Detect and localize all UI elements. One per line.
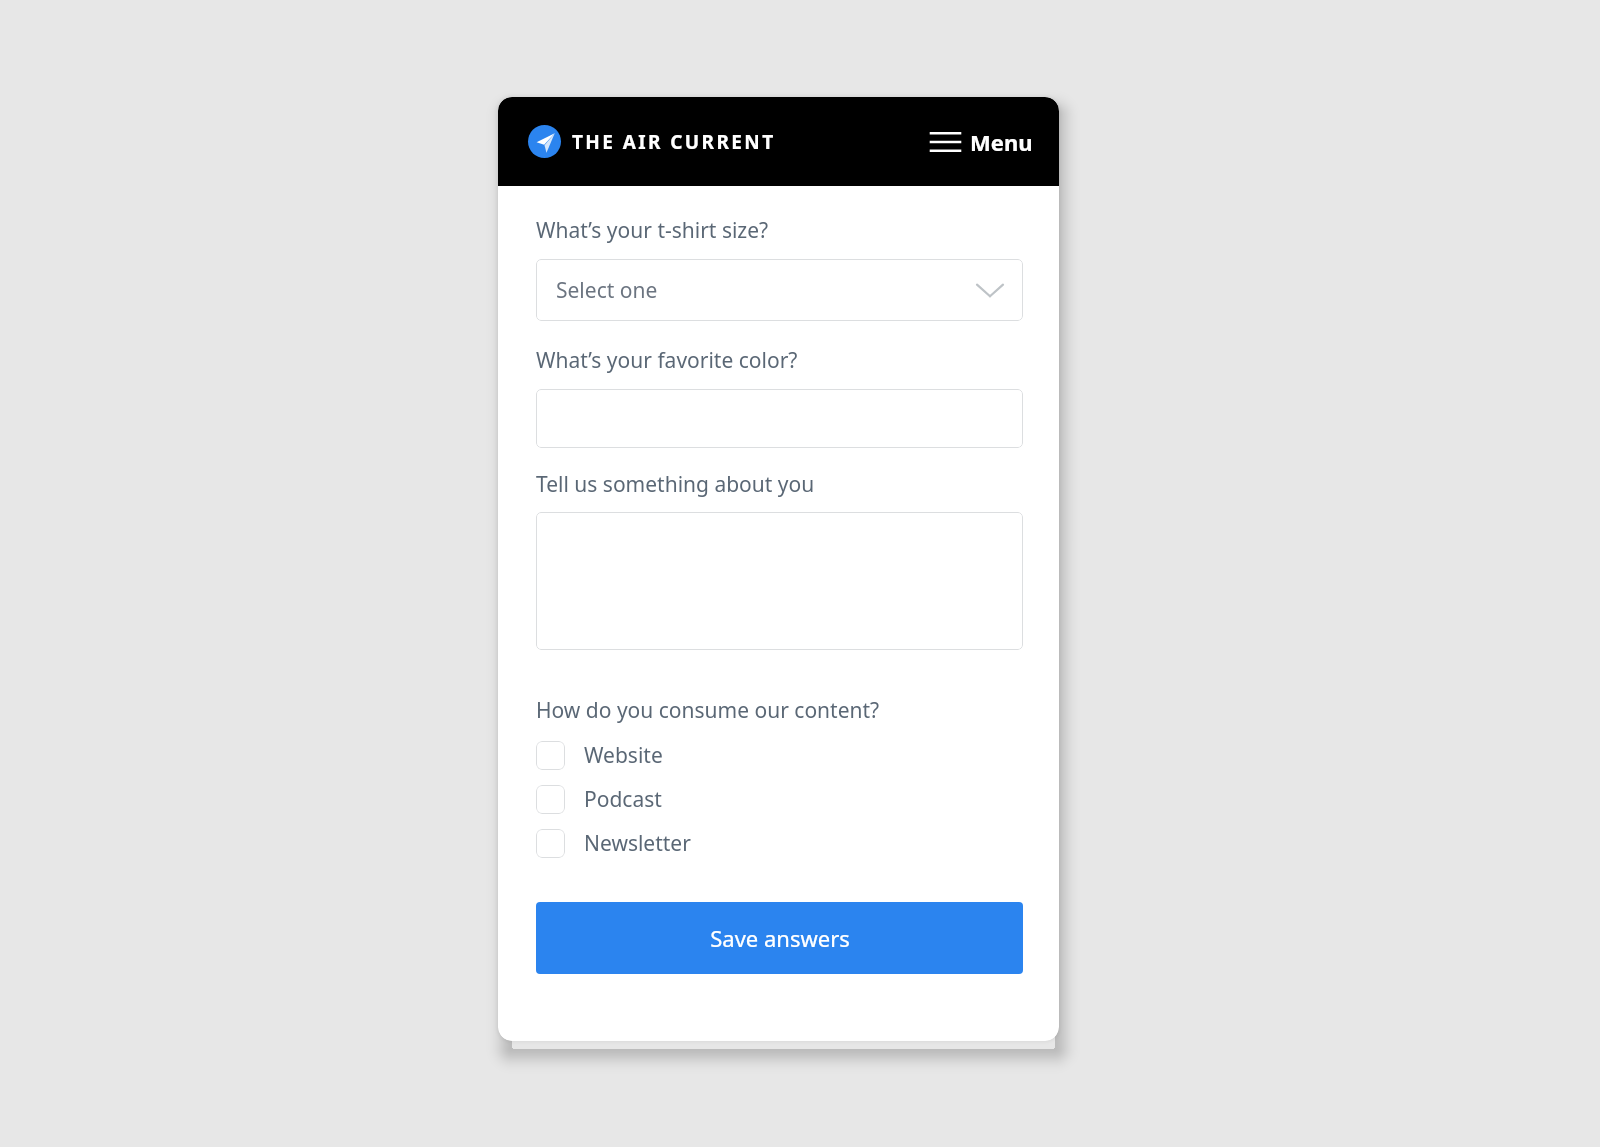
staticText: Select one	[556, 276, 658, 305]
button[interactable]: The Air Current home	[528, 125, 776, 158]
button[interactable]: Save answers	[536, 902, 1023, 974]
staticText: What’s your t-shirt size?	[536, 216, 769, 245]
button[interactable]: Newsletter	[536, 821, 1023, 865]
button[interactable]: Select one	[536, 259, 1023, 321]
button[interactable]: Menu	[929, 121, 1035, 163]
button[interactable]: Podcast	[536, 777, 1023, 821]
staticText: Website	[584, 741, 663, 770]
other: Menu	[931, 131, 960, 153]
button[interactable]	[536, 389, 1023, 448]
button[interactable]: Website	[536, 733, 1023, 777]
staticText: How do you consume our content?	[536, 696, 880, 725]
button[interactable]	[536, 512, 1023, 650]
staticText: What’s your favorite color?	[536, 346, 798, 375]
staticText: Tell us something about you	[536, 470, 815, 499]
staticText: Podcast	[584, 785, 662, 814]
staticText: Newsletter	[584, 829, 691, 858]
staticText: Save answers	[710, 923, 850, 953]
staticText: THE AIR CURRENT	[572, 129, 776, 155]
staticText: Menu	[970, 127, 1033, 157]
